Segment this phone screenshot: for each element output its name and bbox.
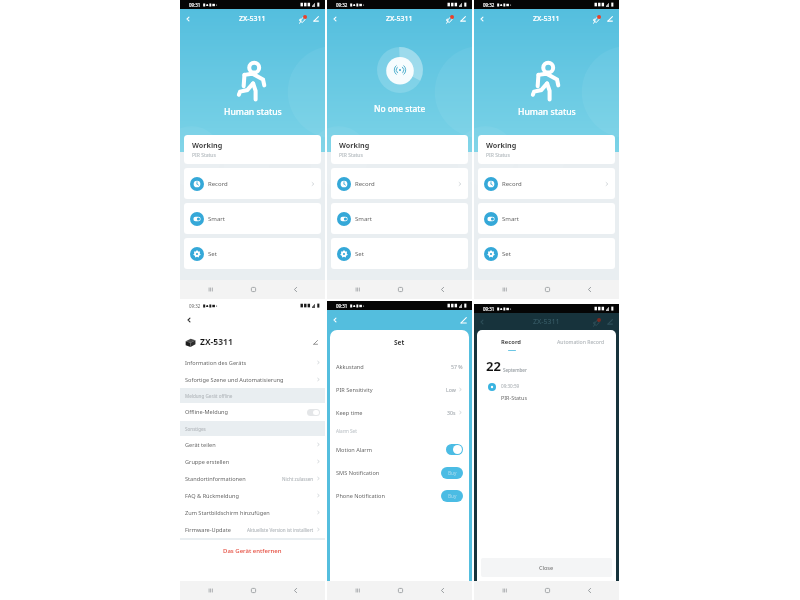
staticText: Human status xyxy=(224,106,282,118)
button[interactable]: Back xyxy=(475,12,489,26)
button[interactable]: Recent apps xyxy=(345,280,369,299)
staticText: Set xyxy=(394,338,405,347)
button[interactable]: Information des Geräts xyxy=(180,354,325,371)
button[interactable]: Edit xyxy=(309,12,323,26)
button[interactable]: Set xyxy=(478,238,615,269)
staticText: Meldung Gerät offline xyxy=(185,393,233,399)
button[interactable]: Edit xyxy=(456,12,470,26)
button[interactable]: Gerät teilen xyxy=(180,436,325,453)
button[interactable]: Edit xyxy=(456,313,470,327)
staticText: Automation Record xyxy=(557,338,605,345)
staticText: Record xyxy=(502,180,522,188)
button[interactable]: Close xyxy=(481,558,612,577)
button[interactable]: Notifications xyxy=(589,315,603,329)
staticText: 09:31 xyxy=(189,2,201,8)
staticText: 09:32 xyxy=(336,2,348,8)
staticText: Gruppe erstellen xyxy=(185,458,230,466)
button[interactable]: Keep time xyxy=(330,401,469,424)
staticText: Zum Startbildschirm hinzufügen xyxy=(185,509,270,517)
button[interactable]: Back xyxy=(430,581,454,600)
staticText: PIR Sensitivity xyxy=(336,386,373,394)
button[interactable]: Back xyxy=(283,581,307,600)
button[interactable]: Set xyxy=(331,238,468,269)
button[interactable]: Sofortige Szene und Automatisierung xyxy=(180,371,325,388)
button[interactable]: Motion Alarm xyxy=(330,438,469,461)
button[interactable]: Set xyxy=(184,238,321,269)
staticText: Set xyxy=(355,250,364,258)
button[interactable]: Smart xyxy=(331,203,468,234)
button[interactable]: SMS Notification xyxy=(330,461,469,484)
staticText: PIR Status xyxy=(192,152,216,159)
button[interactable]: Rename device xyxy=(310,337,320,347)
button[interactable]: Record xyxy=(331,168,468,199)
button[interactable]: PIR Sensitivity xyxy=(330,378,469,401)
button[interactable]: Recent apps xyxy=(345,581,369,600)
staticText: Record xyxy=(501,338,522,346)
button[interactable]: Back xyxy=(475,315,489,329)
button[interactable]: Offline-Meldung xyxy=(180,403,325,421)
button[interactable]: Back xyxy=(430,280,454,299)
button[interactable]: Akkustand xyxy=(330,355,469,378)
button[interactable]: Notifications xyxy=(442,12,456,26)
button[interactable]: Recent apps xyxy=(492,581,516,600)
staticText: Buy xyxy=(448,470,457,477)
button[interactable]: Edit xyxy=(603,315,617,329)
button[interactable]: Buy xyxy=(441,490,463,502)
staticText: Standortinformationen xyxy=(185,475,246,483)
staticText: Firmware-Update xyxy=(185,526,231,534)
button[interactable]: Home xyxy=(388,280,412,299)
staticText: Aktuellste Version ist installiert xyxy=(247,527,314,533)
button[interactable]: Recent apps xyxy=(198,581,222,600)
staticText: Record xyxy=(208,180,228,188)
button[interactable]: Firmware-Update xyxy=(180,521,325,538)
button[interactable]: Gruppe erstellen xyxy=(180,453,325,470)
button[interactable]: FAQ & Rückmeldung xyxy=(180,487,325,504)
button[interactable]: Back xyxy=(181,12,195,26)
button[interactable]: Standortinformationen xyxy=(180,470,325,487)
staticText: Motion Alarm xyxy=(336,446,372,454)
staticText: Human status xyxy=(518,106,576,118)
button[interactable]: Home xyxy=(535,280,559,299)
button[interactable]: Notifications xyxy=(589,12,603,26)
button[interactable]: Home xyxy=(535,581,559,600)
button[interactable]: Working xyxy=(478,135,615,164)
staticText: 57 % xyxy=(451,363,463,370)
staticText: 09:31 xyxy=(483,306,495,312)
staticText: FAQ & Rückmeldung xyxy=(185,492,239,500)
button[interactable]: Back xyxy=(328,313,342,327)
button[interactable]: Home xyxy=(241,581,265,600)
button[interactable]: Back xyxy=(577,581,601,600)
staticText: Set xyxy=(502,250,511,258)
button[interactable]: Smart xyxy=(184,203,321,234)
button[interactable]: Edit xyxy=(603,12,617,26)
staticText: Working xyxy=(486,140,517,150)
button[interactable]: Back xyxy=(328,12,342,26)
button[interactable]: Back xyxy=(182,313,196,327)
button[interactable]: Home xyxy=(241,280,265,299)
button[interactable]: Record xyxy=(495,337,528,347)
button[interactable]: Automation Record xyxy=(553,337,609,346)
staticText: 09:32 xyxy=(189,303,201,309)
button[interactable]: Back xyxy=(577,280,601,299)
button[interactable]: Das Gerät entfernen xyxy=(180,540,325,562)
staticText: Low xyxy=(446,386,456,393)
button[interactable]: Back xyxy=(283,280,307,299)
button[interactable]: Record xyxy=(478,168,615,199)
staticText: ZX-5311 xyxy=(239,14,266,24)
button[interactable]: Notifications xyxy=(295,12,309,26)
button[interactable]: Recent apps xyxy=(492,280,516,299)
button[interactable]: Phone Notification xyxy=(330,484,469,507)
staticText: Close xyxy=(539,564,554,572)
button[interactable]: Smart xyxy=(478,203,615,234)
button[interactable]: Working xyxy=(331,135,468,164)
button[interactable]: Home xyxy=(388,581,412,600)
button[interactable]: Record xyxy=(184,168,321,199)
staticText: ZX-5311 xyxy=(533,14,560,24)
button[interactable]: Buy xyxy=(441,467,463,479)
staticText: 09:31 xyxy=(336,303,348,309)
button[interactable]: Recent apps xyxy=(198,280,222,299)
button[interactable]: Working xyxy=(184,135,321,164)
button[interactable]: Zum Startbildschirm hinzufügen xyxy=(180,504,325,521)
staticText: Information des Geräts xyxy=(185,359,247,367)
staticText: 30s xyxy=(447,409,456,416)
